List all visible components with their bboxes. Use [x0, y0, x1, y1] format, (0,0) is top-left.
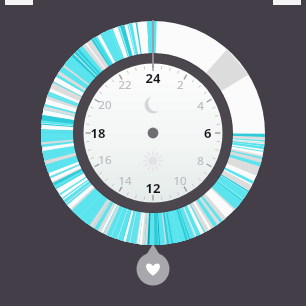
button[interactable]: 24 hour sleep watch face	[0, 0, 306, 306]
